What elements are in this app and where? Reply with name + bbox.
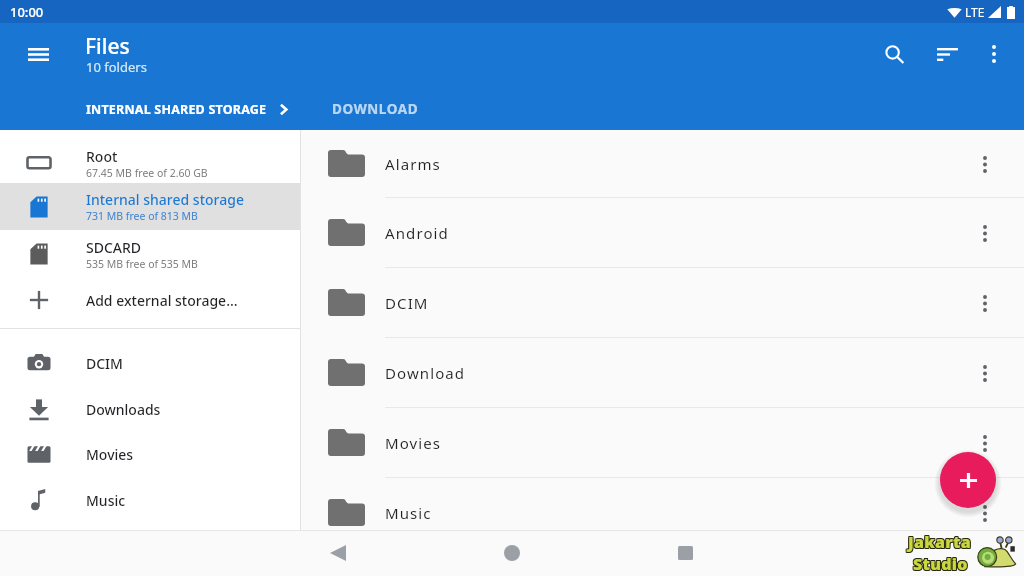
- button[interactable]: More options: [961, 349, 1009, 397]
- button[interactable]: Android: [301, 198, 1024, 267]
- staticText: Jakarta: [907, 532, 971, 554]
- staticText: Jakarta: [908, 532, 972, 554]
- staticText: Jakarta: [908, 531, 972, 553]
- button[interactable]: INTERNAL SHARED STORAGE: [84, 97, 269, 122]
- button[interactable]: More options: [961, 140, 1009, 188]
- button[interactable]: DCIM: [301, 268, 1024, 337]
- staticText: Alarms: [385, 154, 441, 174]
- button[interactable]: More options: [970, 30, 1018, 78]
- button[interactable]: Back: [315, 530, 361, 576]
- staticText: Jakarta: [907, 530, 971, 552]
- staticText: 535 MB free of 535 MB: [86, 257, 198, 271]
- button[interactable]: Download: [301, 338, 1024, 407]
- staticText: Movies: [385, 433, 442, 453]
- button[interactable]: More options: [961, 489, 1009, 537]
- staticText: Download: [385, 363, 466, 383]
- button[interactable]: DOWNLOAD: [330, 96, 421, 122]
- staticText: Studio: [914, 554, 969, 576]
- staticText: Jakarta: [909, 531, 973, 553]
- staticText: Movies: [86, 445, 134, 464]
- staticText: Studio: [913, 554, 968, 576]
- button[interactable]: Downloads: [0, 386, 300, 432]
- staticText: Jakarta: [908, 530, 972, 552]
- staticText: Studio: [914, 553, 969, 575]
- staticText: Downloads: [86, 400, 161, 419]
- staticText: DOWNLOAD: [332, 100, 419, 118]
- staticText: Internal shared storage: [86, 190, 244, 209]
- staticText: DCIM: [86, 354, 123, 373]
- staticText: INTERNAL SHARED STORAGE: [86, 101, 267, 118]
- staticText: Jakarta: [909, 530, 973, 552]
- staticText: 731 MB free of 813 MB: [86, 209, 198, 223]
- button[interactable]: SDCARD: [0, 231, 300, 277]
- button[interactable]: More options: [961, 279, 1009, 327]
- staticText: Studio: [913, 553, 968, 575]
- staticText: DCIM: [385, 293, 429, 313]
- button[interactable]: DCIM: [0, 340, 300, 386]
- button[interactable]: More options: [961, 209, 1009, 257]
- staticText: Jakarta: [907, 531, 971, 553]
- button[interactable]: Internal shared storage: [0, 183, 300, 230]
- staticText: 10 folders: [86, 58, 147, 76]
- button[interactable]: Search: [874, 30, 922, 78]
- button[interactable]: Add: [940, 452, 996, 508]
- staticText: Studio: [912, 552, 967, 574]
- button[interactable]: Open navigation drawer: [14, 30, 62, 78]
- button[interactable]: Music: [301, 478, 1024, 547]
- button[interactable]: Sort: [922, 30, 970, 78]
- button[interactable]: Home: [489, 530, 535, 576]
- staticText: Studio: [914, 552, 969, 574]
- button[interactable]: More options: [961, 419, 1009, 467]
- button[interactable]: Movies: [301, 408, 1024, 477]
- button[interactable]: Movies: [0, 431, 300, 477]
- button[interactable]: Add external storage…: [0, 277, 300, 323]
- staticText: Music: [385, 503, 432, 523]
- staticText: 10:00: [10, 3, 44, 21]
- staticText: 67.45 MB free of 2.60 GB: [86, 166, 208, 180]
- staticText: LTE: [965, 4, 985, 20]
- staticText: SDCARD: [86, 238, 142, 257]
- button[interactable]: Music: [0, 477, 300, 523]
- staticText: Studio: [913, 552, 968, 574]
- button[interactable]: Root: [0, 140, 300, 186]
- staticText: Studio: [912, 554, 967, 576]
- button[interactable]: Alarms: [301, 130, 1024, 197]
- staticText: Jakarta: [909, 532, 973, 554]
- staticText: Music: [86, 491, 126, 510]
- staticText: Studio: [912, 553, 967, 575]
- staticText: Android: [385, 223, 449, 243]
- staticText: Add external storage…: [86, 291, 238, 310]
- staticText: Files: [85, 32, 130, 61]
- button[interactable]: Recents: [662, 530, 708, 576]
- staticText: Root: [86, 147, 118, 166]
